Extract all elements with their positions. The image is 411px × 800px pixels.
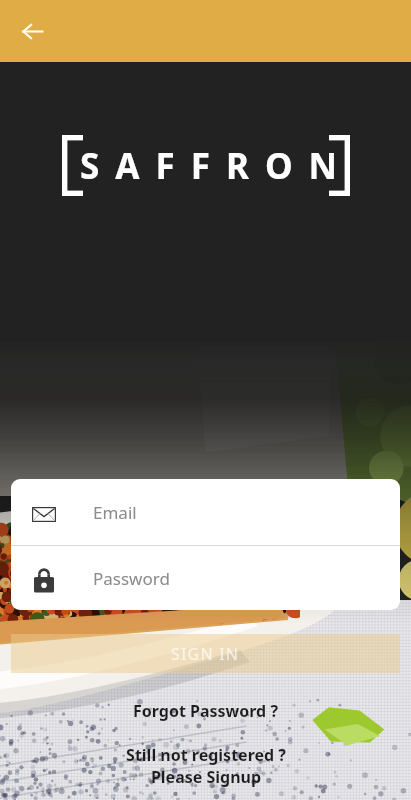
button[interactable]: Back <box>12 11 52 51</box>
staticText: Password <box>93 567 170 590</box>
staticText: Forgot Password ? <box>133 700 279 722</box>
staticText: SIGN IN <box>171 643 240 665</box>
button[interactable]: Still not registered ? Please Signup <box>0 744 411 788</box>
button[interactable]: Email <box>11 479 400 545</box>
staticText: SAFFRON <box>80 142 354 190</box>
staticText: Email <box>93 501 137 524</box>
button[interactable]: Password <box>11 546 400 610</box>
button[interactable]: SIGN IN <box>11 634 400 673</box>
button[interactable]: Forgot Password ? <box>0 700 411 722</box>
staticText: Still not registered ? Please Signup <box>126 744 286 788</box>
